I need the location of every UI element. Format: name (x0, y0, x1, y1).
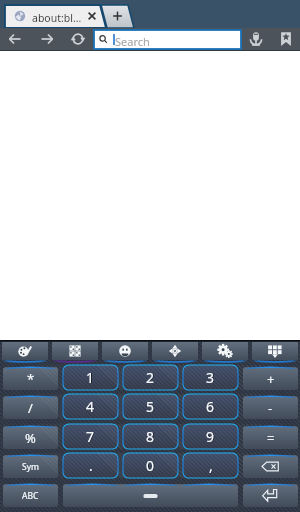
staticText: Sym (22, 461, 39, 473)
button[interactable]: Close tab (84, 8, 100, 24)
staticText: . (90, 456, 94, 475)
button[interactable]: . (63, 453, 118, 478)
staticText: 4 (86, 397, 95, 416)
staticText: 1 (87, 368, 96, 387)
button[interactable]: New tab (100, 4, 136, 28)
button[interactable]: about:bl… (4, 4, 108, 28)
button[interactable]: Emoji (102, 342, 148, 363)
staticText: % (25, 429, 36, 447)
staticText: , (209, 456, 213, 475)
staticText: 6 (207, 397, 216, 416)
staticText: 2 (146, 368, 155, 387)
staticText: 7 (87, 427, 96, 446)
staticText: 4 (87, 397, 96, 416)
staticText: 5 (147, 397, 156, 416)
staticText: 8 (146, 427, 155, 446)
button[interactable]: Bookmarks (276, 29, 296, 49)
button[interactable]: Settings (202, 342, 248, 363)
button[interactable]: 3 (183, 365, 238, 390)
button[interactable]: Backspace (243, 453, 298, 478)
button[interactable]: Move cursor (152, 342, 198, 363)
staticText: . (89, 456, 93, 475)
staticText: 0 (147, 456, 156, 475)
button[interactable]: Space (63, 482, 238, 507)
staticText: 6 (206, 397, 215, 416)
button[interactable]: = (243, 424, 298, 449)
staticText: 3 (206, 368, 215, 387)
button[interactable]: 2 (123, 365, 178, 390)
staticText: , (210, 456, 214, 475)
staticText: + (267, 370, 275, 388)
button[interactable]: 9 (183, 424, 238, 449)
button[interactable]: - (243, 394, 298, 419)
button[interactable]: Voice search (246, 29, 266, 49)
button[interactable]: Back (5, 29, 25, 49)
staticText: - (268, 399, 273, 417)
staticText: about:bl… (32, 11, 82, 25)
button[interactable]: Keyboard layout (52, 342, 98, 363)
staticText: 5 (146, 397, 155, 416)
staticText: ABC (22, 490, 39, 502)
button[interactable]: Theme (2, 342, 48, 363)
button[interactable]: / (3, 394, 58, 419)
staticText: 0 (146, 456, 155, 475)
staticText: 2 (147, 368, 156, 387)
button[interactable]: % (3, 424, 58, 449)
button[interactable]: 0 (123, 453, 178, 478)
button[interactable]: 7 (63, 424, 118, 449)
button[interactable]: Search (94, 30, 241, 49)
button[interactable]: 8 (123, 424, 178, 449)
button[interactable]: Reload (68, 29, 88, 49)
button[interactable]: 1 (63, 365, 118, 390)
staticText: 3 (207, 368, 216, 387)
button[interactable]: ABC (3, 482, 58, 507)
button[interactable]: , (183, 453, 238, 478)
staticText: Search (115, 34, 150, 49)
button[interactable]: 5 (123, 394, 178, 419)
staticText: * (27, 370, 35, 388)
staticText: / (28, 399, 33, 417)
button[interactable]: + (243, 365, 298, 390)
button[interactable]: Forward (37, 29, 57, 49)
staticText: 7 (86, 427, 95, 446)
button[interactable]: * (3, 365, 58, 390)
button[interactable]: Sym (3, 453, 58, 478)
button[interactable]: 6 (183, 394, 238, 419)
button[interactable]: Hide keyboard (252, 342, 298, 363)
staticText: 1 (86, 368, 95, 387)
staticText: 9 (207, 427, 216, 446)
button[interactable]: 4 (63, 394, 118, 419)
staticText: 9 (206, 427, 215, 446)
staticText: = (267, 429, 275, 447)
button[interactable]: Enter (243, 482, 298, 507)
staticText: 8 (147, 427, 156, 446)
